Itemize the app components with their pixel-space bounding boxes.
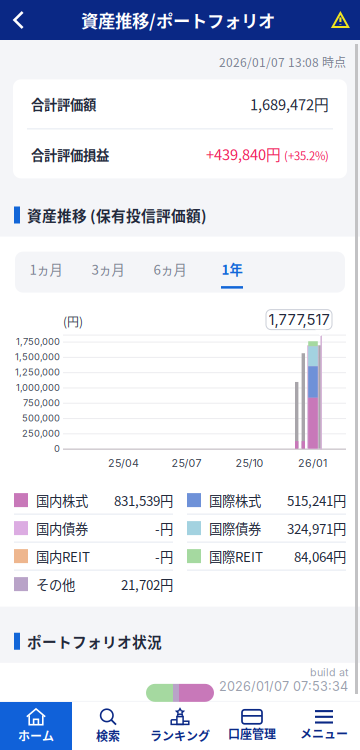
staticText: 検索 bbox=[96, 727, 120, 744]
button[interactable]: 検索 bbox=[72, 702, 144, 750]
staticText: (+35.2%) bbox=[281, 147, 329, 163]
staticText: 2026/01/07 07:53:34 bbox=[219, 679, 348, 694]
button[interactable]: 1年 bbox=[201, 252, 263, 293]
staticText: 国内REIT bbox=[36, 546, 90, 566]
button[interactable]: ランキング bbox=[144, 702, 216, 750]
staticText: build at bbox=[310, 666, 348, 679]
staticText: 831,539円 bbox=[114, 490, 173, 510]
staticText: 250,000 bbox=[22, 428, 60, 439]
staticText: 750,000 bbox=[23, 397, 60, 408]
staticText: 26/01 bbox=[298, 457, 327, 469]
button[interactable]: 6ヵ月 bbox=[139, 252, 201, 293]
staticText: 3ヵ月 bbox=[91, 259, 124, 278]
staticText: +439,840円 bbox=[206, 143, 281, 164]
staticText: 0 bbox=[54, 443, 60, 454]
staticText: -円 bbox=[155, 518, 173, 538]
staticText: 84,064円 bbox=[294, 546, 346, 566]
staticText: 25/10 bbox=[235, 457, 263, 469]
staticText: 25/07 bbox=[171, 457, 201, 469]
staticText: 2026/01/07 13:08 時点 bbox=[219, 53, 346, 70]
staticText: 21,702円 bbox=[121, 574, 173, 594]
staticText: 1,000,000 bbox=[16, 382, 60, 393]
staticText: -円 bbox=[155, 546, 173, 566]
staticText: 1ヵ月 bbox=[29, 259, 62, 278]
staticText: 合計評価額 bbox=[31, 94, 96, 113]
staticText: 25/04 bbox=[108, 457, 139, 469]
staticText: ポートフォリオ状況 bbox=[27, 631, 162, 652]
staticText: 資産推移/ポートフォリオ bbox=[81, 7, 275, 33]
staticText: 合計評価損益 bbox=[31, 145, 109, 164]
staticText: 1,689,472円 bbox=[250, 93, 329, 114]
staticText: ホーム bbox=[18, 727, 54, 744]
button[interactable]: 戻る bbox=[0, 0, 33, 40]
staticText: 口座管理 bbox=[228, 725, 276, 742]
staticText: ランキング bbox=[150, 727, 210, 744]
button[interactable]: ホーム bbox=[0, 702, 72, 750]
staticText: メニュー bbox=[300, 725, 348, 742]
staticText: 515,241円 bbox=[287, 490, 346, 510]
button[interactable]: 1ヵ月 bbox=[15, 252, 77, 293]
staticText: 1,250,000 bbox=[15, 367, 60, 378]
staticText: 324,971円 bbox=[287, 518, 346, 538]
staticText: 1年 bbox=[221, 259, 242, 278]
staticText: 国際債券 bbox=[209, 518, 261, 538]
staticText: 1,750,000 bbox=[16, 336, 60, 347]
button[interactable]: 警告 bbox=[323, 0, 360, 40]
staticText: 国内債券 bbox=[36, 518, 88, 538]
button[interactable]: 3ヵ月 bbox=[77, 252, 139, 293]
staticText: 500,000 bbox=[22, 412, 60, 424]
staticText: 1,777,517 bbox=[268, 311, 329, 328]
staticText: 国内株式 bbox=[36, 490, 88, 510]
button[interactable]: 口座管理 bbox=[216, 702, 288, 750]
button[interactable]: メニュー bbox=[288, 702, 360, 750]
staticText: (円) bbox=[63, 313, 83, 330]
staticText: 国際株式 bbox=[209, 490, 261, 510]
staticText: その他 bbox=[36, 574, 75, 594]
staticText: 国際REIT bbox=[209, 546, 263, 566]
staticText: 1,500,000 bbox=[15, 351, 60, 363]
staticText: 資産推移 (保有投信評価額) bbox=[27, 204, 207, 226]
staticText: 6ヵ月 bbox=[153, 259, 186, 278]
